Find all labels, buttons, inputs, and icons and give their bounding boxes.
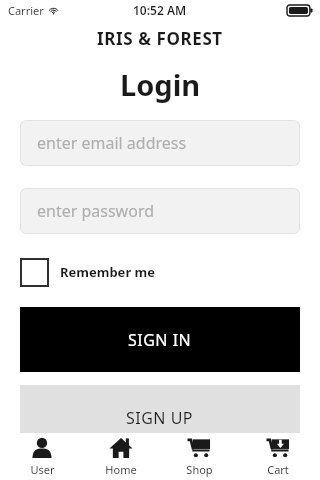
staticText: Carrier [8,3,44,18]
button[interactable]: enter password [20,188,300,234]
staticText: Shop [186,462,213,477]
staticText: enter password [37,200,155,222]
button[interactable]: Cart [242,433,314,480]
staticText: Login [120,65,201,104]
button[interactable]: User profile [6,433,78,480]
staticText: Home [105,462,137,477]
staticText: IRIS & FOREST [97,27,223,50]
staticText: Cart [267,462,289,477]
button[interactable]: SIGN UP [20,385,300,450]
staticText: enter email address [37,132,187,154]
staticText: User [30,462,55,477]
button[interactable]: enter email address [20,120,300,166]
staticText: Remember me [60,263,156,281]
button[interactable]: SIGN IN [20,307,300,372]
button[interactable]: Shop [163,433,235,480]
staticText: 10:52 AM [133,2,187,18]
button[interactable]: Remember me [20,257,156,287]
staticText: SIGN UP [126,407,194,429]
button[interactable]: Home [85,433,157,480]
staticText: SIGN IN [128,329,192,351]
